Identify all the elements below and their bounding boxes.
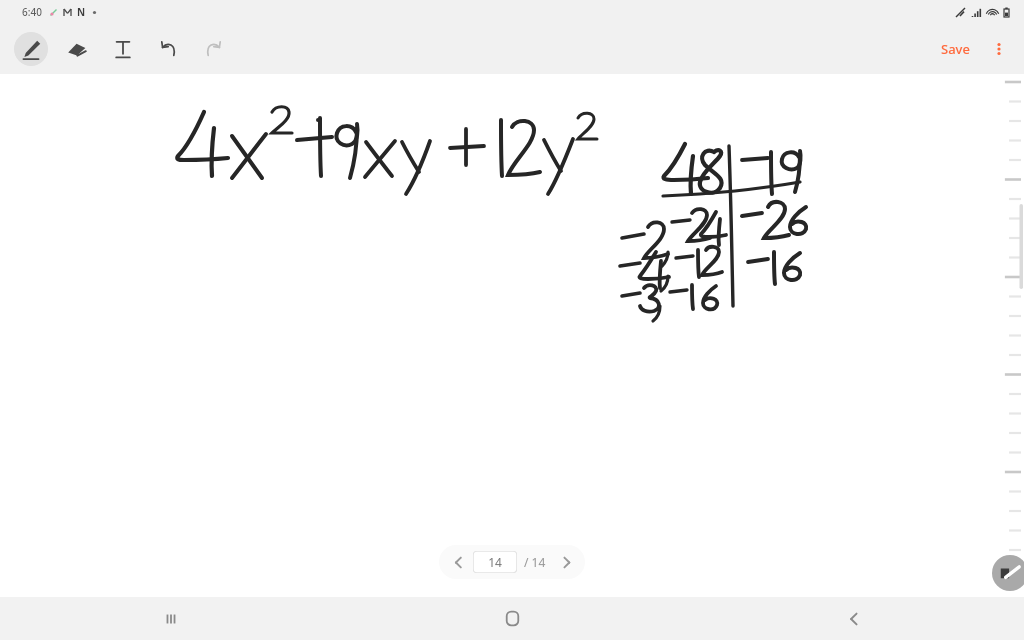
- button[interactable]: Undo: [152, 32, 186, 66]
- button[interactable]: Back: [683, 597, 1024, 640]
- button[interactable]: More options: [984, 34, 1014, 64]
- button[interactable]: Recent apps: [0, 597, 342, 640]
- staticText: 6:40: [22, 5, 42, 19]
- button[interactable]: Text: [106, 32, 140, 66]
- button[interactable]: Home: [342, 597, 683, 640]
- staticText: N: [77, 5, 86, 19]
- button[interactable]: 14: [473, 551, 517, 573]
- button[interactable]: Redo: [196, 32, 230, 66]
- button[interactable]: Write: [992, 555, 1024, 591]
- button[interactable]: Eraser: [60, 32, 94, 66]
- staticText: / 14: [524, 554, 546, 570]
- button[interactable]: Pen: [14, 32, 48, 66]
- staticText: 14: [488, 554, 502, 570]
- button[interactable]: Previous page: [443, 547, 473, 577]
- button[interactable]: Next page: [551, 547, 581, 577]
- staticText: Save: [941, 40, 970, 58]
- button[interactable]: Save: [933, 35, 978, 63]
